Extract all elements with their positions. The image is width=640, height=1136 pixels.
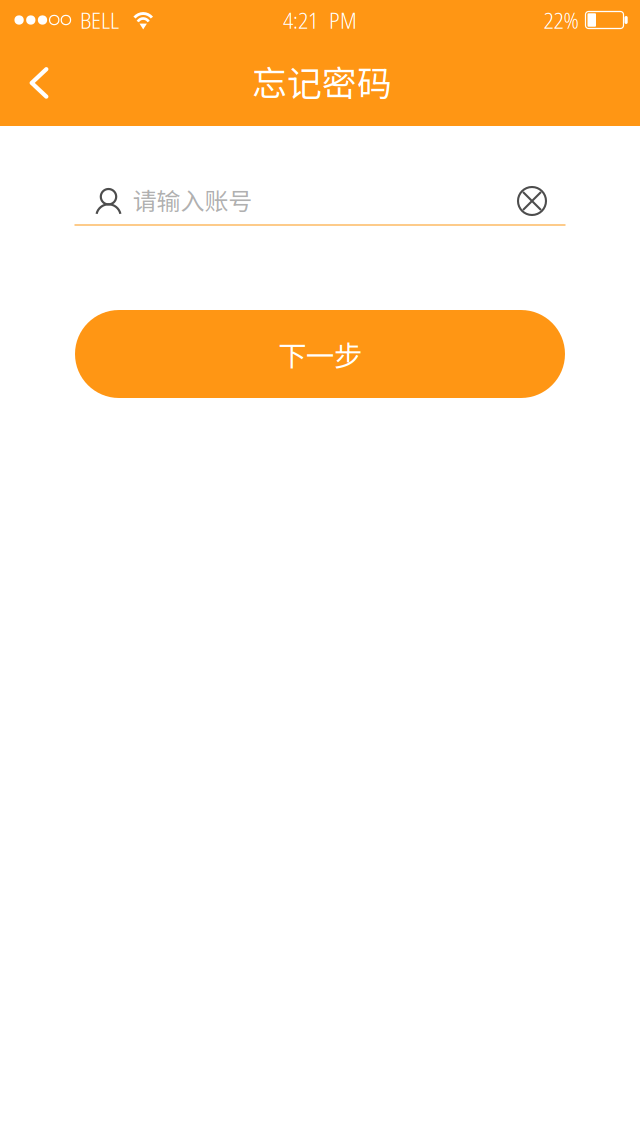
button[interactable]: Back [0, 40, 78, 126]
staticText: 22% [543, 5, 578, 35]
staticText: 4:21 [283, 5, 318, 35]
staticText: PM [329, 5, 357, 35]
button[interactable]: 下一步 [75, 310, 565, 398]
staticText: 忘记密码 [252, 56, 392, 106]
button[interactable]: 请输入账号 [74, 178, 498, 224]
button[interactable]: Clear account field [498, 178, 565, 224]
staticText: BELL [80, 5, 119, 35]
staticText: 请输入账号 [132, 182, 252, 217]
staticText: 下一步 [278, 333, 362, 374]
